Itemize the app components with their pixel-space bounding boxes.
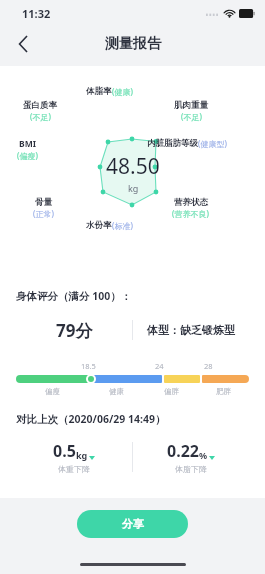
staticText: 11:32 (22, 6, 51, 21)
staticText: 水份率 (86, 220, 112, 231)
staticText: 肌肉重量 (174, 100, 208, 111)
staticText: 健康 (109, 387, 124, 396)
staticText: 蛋白质率 (23, 100, 57, 111)
staticText: 79分 (56, 319, 93, 342)
staticText: 身体评分（满分 100）： (16, 289, 132, 303)
staticText: 对比上次（2020/06/29 14:49） (16, 412, 166, 426)
staticText: kg (76, 449, 88, 461)
staticText: 体重下降 (58, 464, 90, 474)
staticText: 体脂率 (86, 86, 112, 97)
button[interactable]: 分享 (77, 510, 188, 538)
staticText: (不足) (30, 111, 51, 122)
staticText: BMI (19, 138, 36, 150)
staticText: (正常) (33, 208, 54, 219)
staticText: 体型：缺乏锻炼型 (147, 323, 235, 337)
staticText: 测量报告 (105, 35, 161, 53)
staticText: 18.5 (81, 361, 96, 371)
staticText: 0.5 (53, 440, 76, 462)
staticText: 营养状态 (174, 197, 208, 208)
staticText: 内脏脂肪等级 (147, 138, 198, 149)
staticText: (健康) (112, 86, 133, 97)
staticText: 肥胖 (216, 387, 231, 396)
staticText: kg (128, 182, 139, 194)
staticText: (偏瘦) (17, 150, 38, 161)
staticText: 48.50 (106, 152, 160, 181)
staticText: 24 (155, 361, 164, 371)
staticText: 偏瘦 (45, 387, 60, 396)
button[interactable]: Back (8, 29, 38, 59)
staticText: 偏胖 (164, 387, 179, 396)
staticText: 骨量 (35, 197, 52, 208)
staticText: 体脂下降 (175, 464, 207, 474)
staticText: (健康型) (198, 138, 227, 149)
staticText: 0.22 (167, 440, 199, 462)
staticText: (营养不良) (172, 208, 209, 219)
staticText: 28 (204, 361, 213, 371)
staticText: (不足) (181, 111, 202, 122)
staticText: (标准) (112, 220, 133, 231)
staticText: 分享 (122, 517, 144, 531)
staticText: % (199, 449, 208, 461)
